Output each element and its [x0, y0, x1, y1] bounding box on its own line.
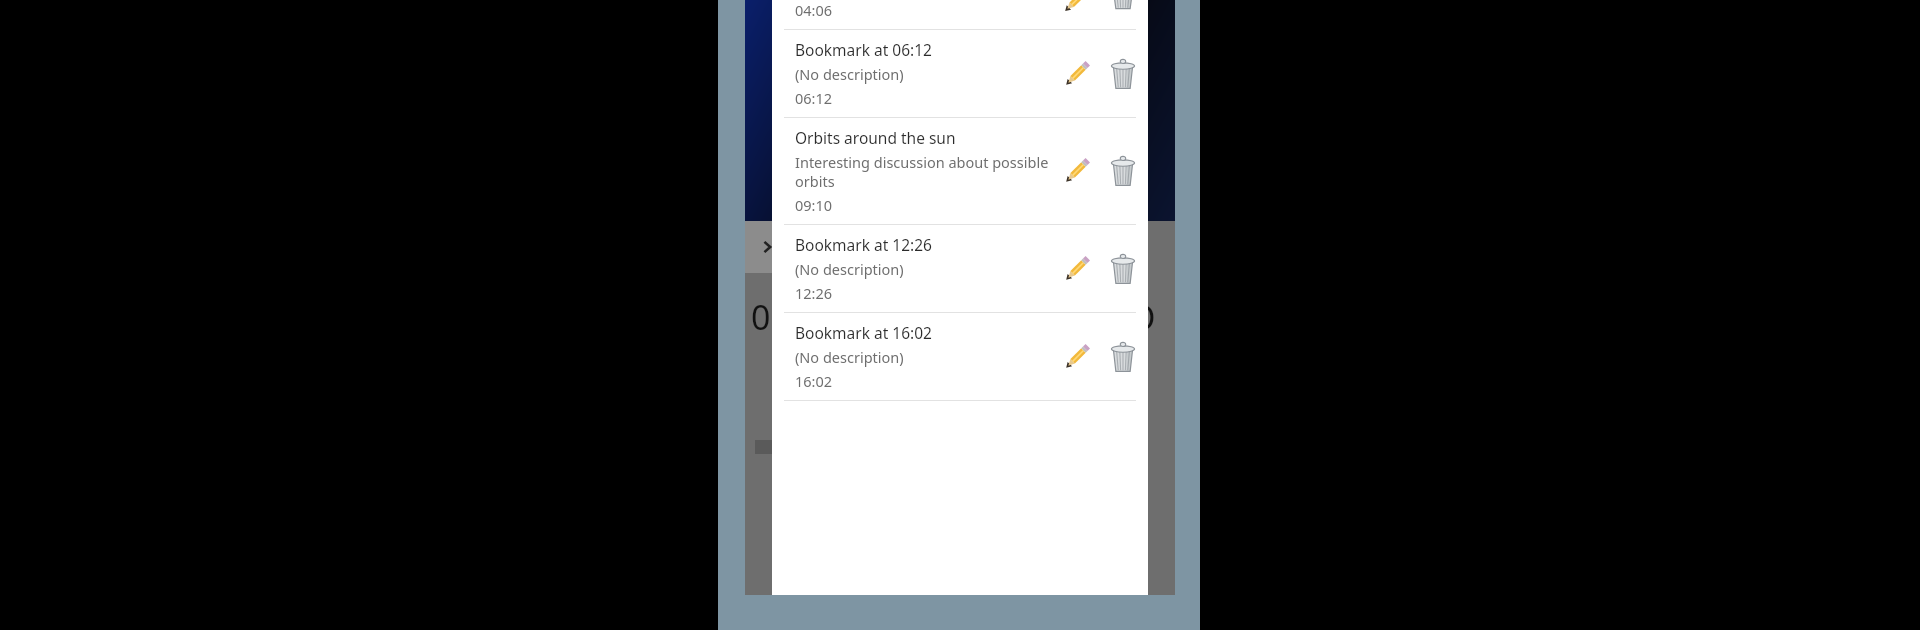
- staticText: 12:26: [795, 283, 833, 303]
- button[interactable]: Bookmark at 06:12: [772, 30, 1148, 117]
- staticText: Interesting discussion about possible or…: [795, 152, 1050, 191]
- staticText: Orbits around the sun: [795, 127, 956, 148]
- button[interactable]: Edit bookmark: [1056, 248, 1098, 290]
- staticText: 0: [751, 294, 771, 340]
- button[interactable]: Delete bookmark: [1098, 332, 1148, 382]
- staticText: (No description): [795, 64, 904, 84]
- button[interactable]: Edit bookmark: [1056, 53, 1098, 95]
- staticText: 04:06: [795, 0, 833, 20]
- staticText: Bookmark at 12:26: [795, 234, 932, 255]
- button[interactable]: Play: [755, 440, 777, 454]
- button[interactable]: Edit bookmark: [1056, 336, 1098, 378]
- staticText: O: [1129, 294, 1156, 340]
- staticText: 06:12: [795, 88, 833, 108]
- button[interactable]: Delete bookmark: [1098, 244, 1148, 294]
- staticText: 09:10: [795, 195, 833, 215]
- staticText: Bookmark at 16:02: [795, 322, 932, 343]
- button[interactable]: Delete bookmark: [1098, 49, 1148, 99]
- button[interactable]: Bookmark at 16:02: [772, 313, 1148, 400]
- staticText: 16:02: [795, 371, 833, 391]
- staticText: (No description): [795, 347, 904, 367]
- button[interactable]: Delete bookmark: [1098, 146, 1148, 196]
- button[interactable]: Bookmark at 12:26: [772, 225, 1148, 312]
- button[interactable]: Orbits around the sun: [772, 118, 1148, 224]
- button[interactable]: Edit bookmark: [1056, 150, 1098, 192]
- button[interactable]: Next: [745, 221, 789, 273]
- staticText: Bookmark at 06:12: [795, 39, 932, 60]
- staticText: (No description): [795, 259, 904, 279]
